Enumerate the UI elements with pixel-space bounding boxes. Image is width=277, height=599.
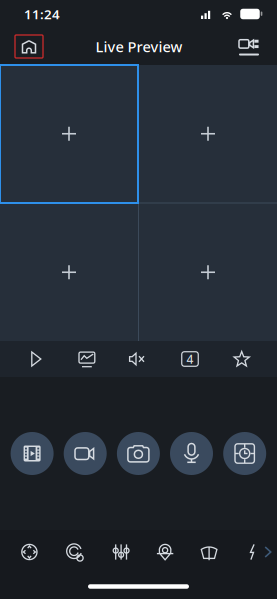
button[interactable]: Snapshot <box>72 341 102 377</box>
button[interactable]: Image settings <box>90 536 152 568</box>
button[interactable]: Talk <box>170 432 213 475</box>
button[interactable]: Spotlight <box>152 536 178 568</box>
button[interactable]: Record <box>64 432 106 475</box>
button[interactable]: Favorite <box>206 341 277 377</box>
button[interactable]: Wiper <box>178 536 240 568</box>
button[interactable]: Clips <box>0 432 64 475</box>
button[interactable]: Detection <box>59 536 90 568</box>
button[interactable]: Mute <box>102 341 174 377</box>
button[interactable]: More <box>264 536 277 568</box>
staticText: 4 <box>186 351 193 367</box>
button[interactable]: Snapshot <box>106 432 170 475</box>
button[interactable]: Add camera <box>139 65 277 202</box>
button[interactable]: Add camera <box>0 203 138 341</box>
staticText: Live Preview <box>95 37 182 56</box>
button[interactable]: Home <box>15 35 43 58</box>
button[interactable]: Siren <box>240 536 264 568</box>
button[interactable]: Pan and tilt <box>0 536 59 568</box>
button[interactable]: Add camera <box>139 203 277 341</box>
button[interactable]: Camera layout <box>235 34 263 59</box>
button[interactable]: Play <box>0 341 72 377</box>
staticText: 11:24 <box>24 5 60 23</box>
button[interactable]: Add camera <box>0 65 138 202</box>
button[interactable]: Timer snapshot <box>213 432 277 475</box>
button[interactable]: Layout 4 <box>174 341 206 377</box>
